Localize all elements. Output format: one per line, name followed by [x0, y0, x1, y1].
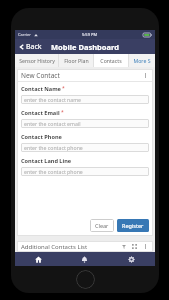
staticText: enter the contact phone	[24, 144, 83, 151]
staticText: Sensor History	[19, 57, 55, 64]
button[interactable]: Floor Plan	[59, 54, 93, 67]
staticText: Contact Name	[21, 85, 61, 93]
button[interactable]: Settings	[108, 252, 155, 266]
staticText: New Contact	[21, 71, 60, 80]
staticText: Contacts	[100, 57, 122, 64]
button[interactable]: enter the contact name	[21, 95, 149, 104]
button[interactable]: Back	[18, 40, 43, 54]
staticText: *	[61, 109, 64, 116]
staticText: *	[62, 85, 65, 92]
staticText: Back	[26, 42, 42, 52]
staticText: Mobile Dashboard	[51, 42, 119, 52]
button[interactable]: Additional Contacts List	[17, 241, 153, 252]
button[interactable]: Home	[15, 252, 61, 266]
staticText: Clear	[95, 222, 109, 229]
staticText: enter the contact name	[24, 96, 81, 103]
staticText: Register	[122, 222, 144, 229]
staticText: More S	[133, 57, 151, 64]
button[interactable]: Clear	[90, 219, 114, 232]
staticText: enter the contact email	[24, 120, 81, 127]
staticText: 5:59 PM	[82, 32, 98, 37]
button[interactable]: enter the contact phone	[21, 167, 149, 176]
button[interactable]: Sensor History	[15, 54, 58, 67]
button[interactable]: enter the contact email	[21, 119, 149, 128]
staticText: Contact Email	[21, 109, 60, 117]
staticText: Floor Plan	[64, 57, 89, 64]
button[interactable]: Notifications	[61, 252, 108, 266]
other: Home button	[76, 270, 95, 289]
button[interactable]: enter the contact phone	[21, 143, 149, 152]
staticText: Carrier	[18, 32, 32, 37]
button[interactable]: Contacts	[94, 54, 128, 67]
staticText: enter the contact phone	[24, 168, 83, 175]
button[interactable]: Expand	[131, 243, 138, 250]
button[interactable]: More S	[129, 54, 155, 67]
staticText: Contact Phone	[21, 133, 62, 141]
button[interactable]: More options	[142, 72, 149, 79]
button[interactable]: Filter	[120, 243, 127, 250]
staticText: Additional Contacts List	[21, 243, 88, 251]
staticText: Contact Land Line	[21, 157, 72, 165]
button[interactable]: Register	[117, 219, 149, 232]
button[interactable]: More options	[142, 243, 149, 250]
